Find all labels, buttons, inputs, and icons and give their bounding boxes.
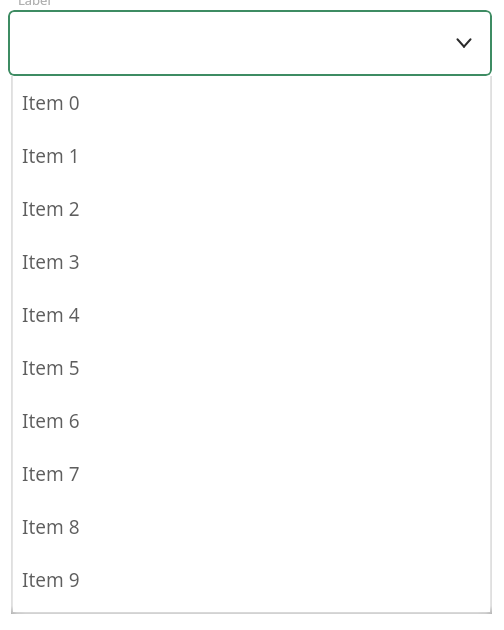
staticText: Item 4 (22, 302, 80, 328)
staticText: Item 2 (22, 196, 80, 222)
button[interactable]: Item 6 (13, 394, 490, 447)
button[interactable]: Item 9 (13, 553, 490, 606)
other: Open dropdown (450, 29, 478, 57)
button[interactable]: Item 3 (13, 235, 490, 288)
staticText: Item 8 (22, 514, 80, 540)
button[interactable]: Item 7 (13, 447, 490, 500)
button[interactable]: Item 0 (13, 76, 490, 129)
staticText: Item 7 (22, 461, 80, 487)
staticText: Item 9 (22, 567, 80, 593)
staticText: Label (18, 0, 51, 9)
staticText: Item 1 (22, 143, 80, 169)
button[interactable]: Item 8 (13, 500, 490, 553)
button[interactable]: Open dropdown (8, 10, 492, 76)
staticText: Item 3 (22, 249, 80, 275)
staticText: Item 6 (22, 408, 80, 434)
button[interactable]: Item 5 (13, 341, 490, 394)
staticText: Item 0 (22, 90, 80, 116)
button[interactable]: Item 1 (13, 129, 490, 182)
button[interactable]: Item 2 (13, 182, 490, 235)
button[interactable]: Item 4 (13, 288, 490, 341)
staticText: Item 5 (22, 355, 80, 381)
